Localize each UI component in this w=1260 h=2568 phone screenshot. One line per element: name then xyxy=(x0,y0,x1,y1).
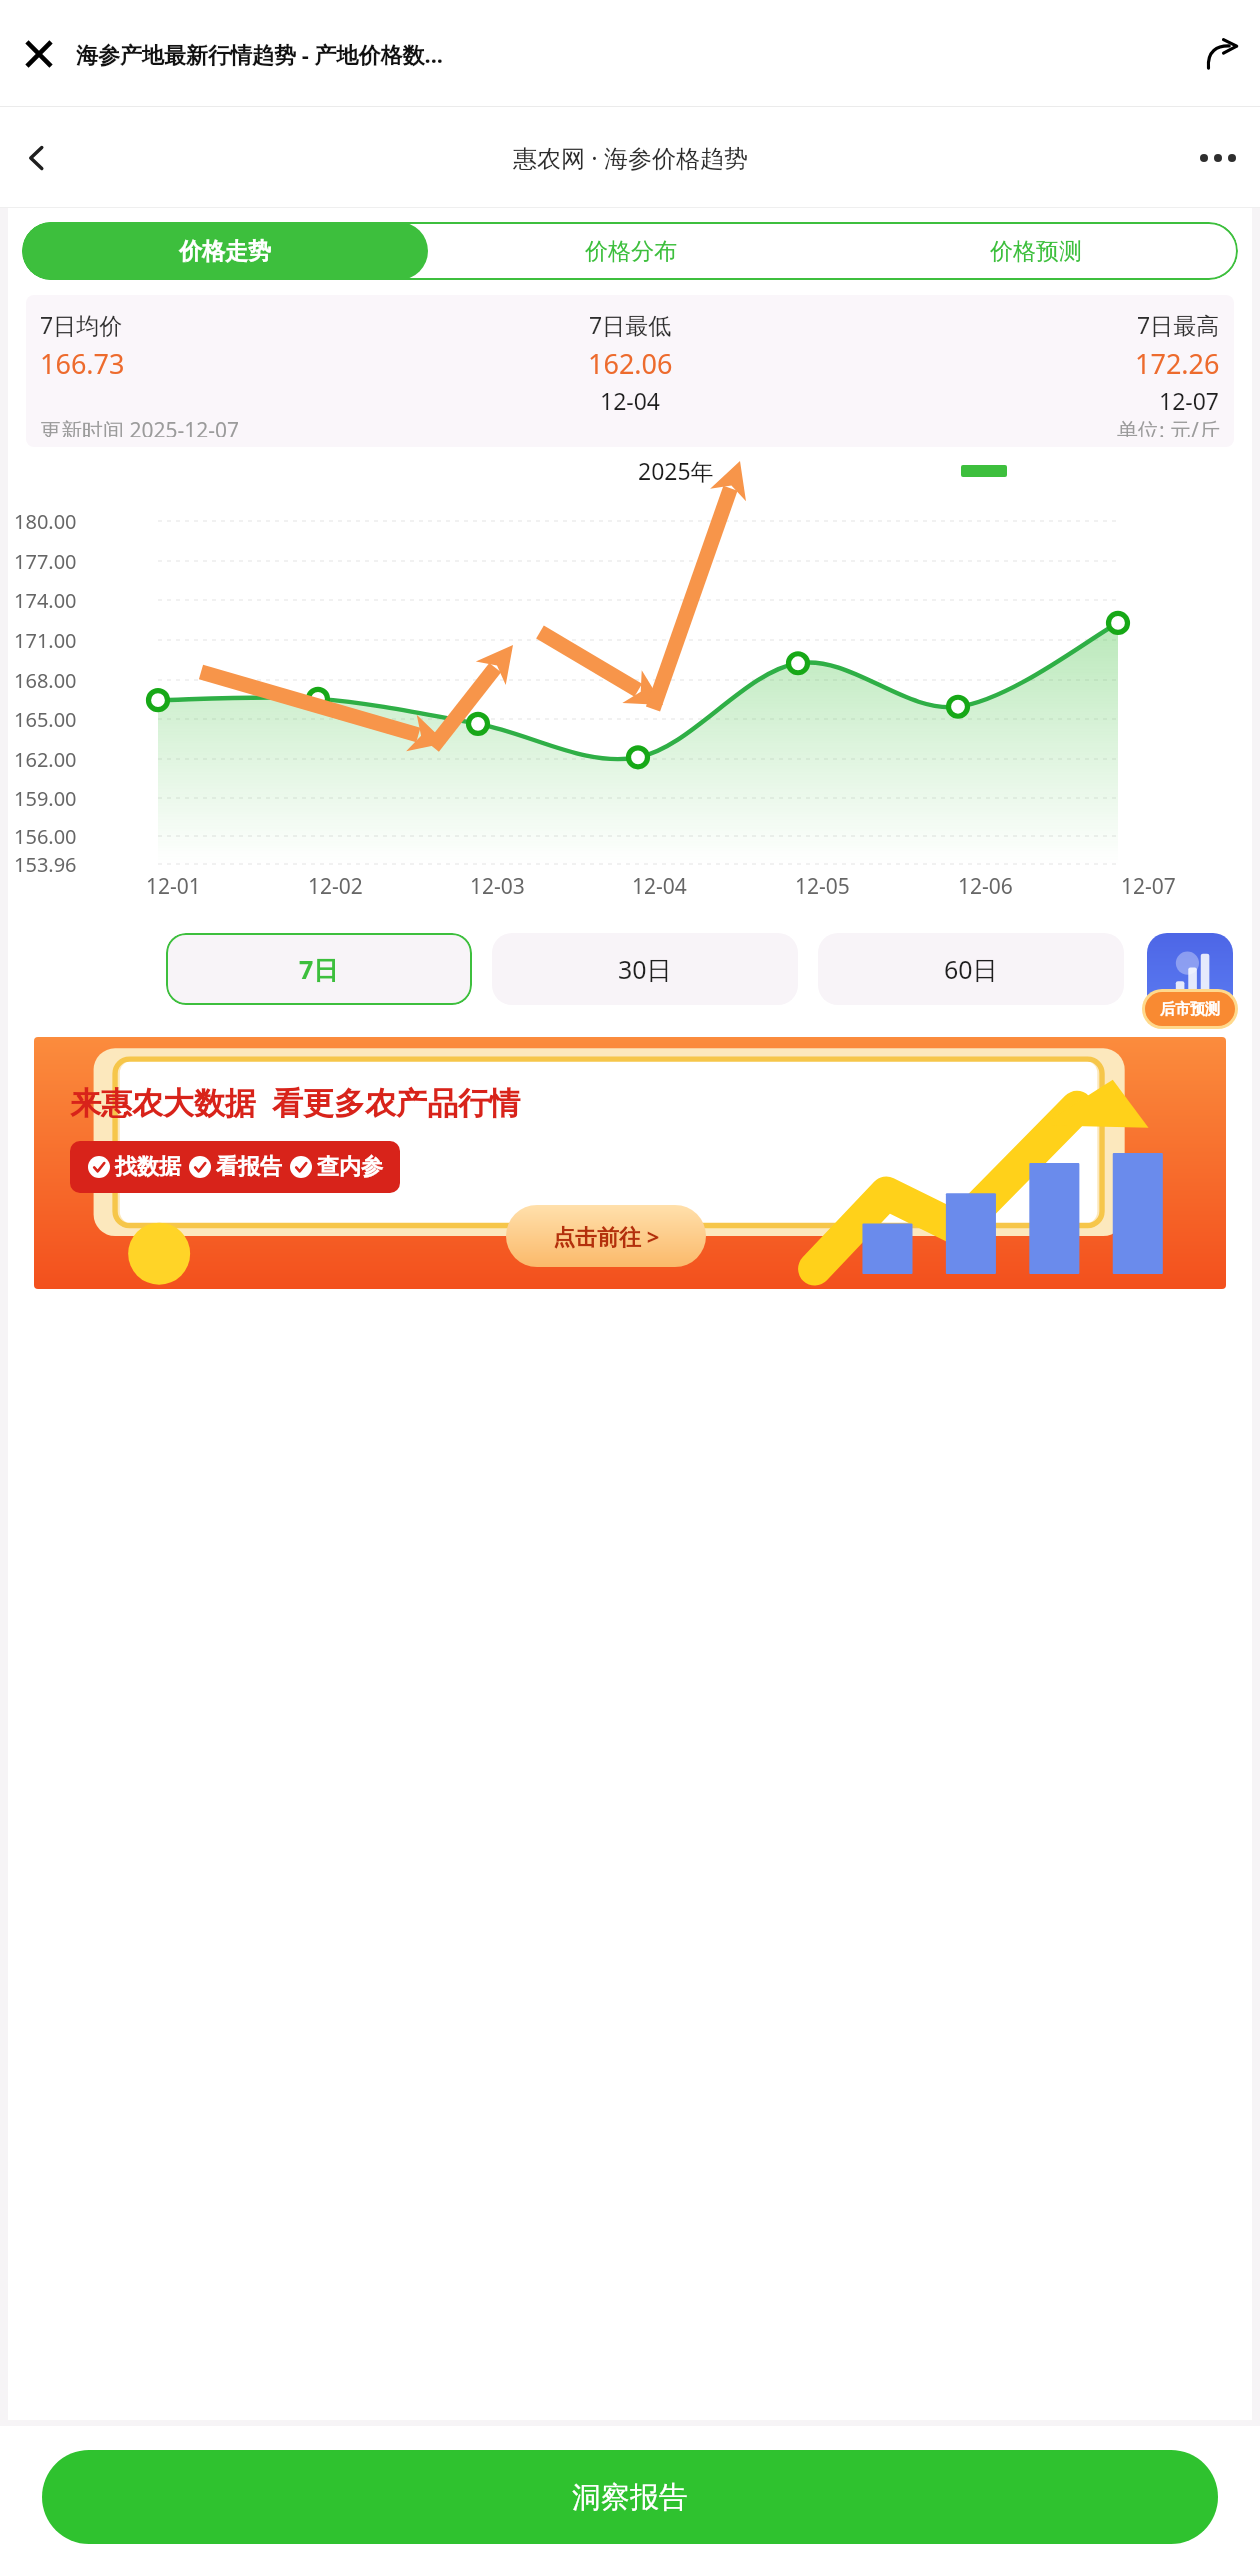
staticText: 168.00 xyxy=(14,667,77,694)
staticText: 166.73 xyxy=(40,345,125,382)
staticText: 12-01 xyxy=(146,872,201,901)
staticText: 12-02 xyxy=(308,872,363,901)
staticText: 7日均价 xyxy=(40,309,123,340)
staticText: 价格预测 xyxy=(990,237,1082,266)
button[interactable]: 价格预测 xyxy=(833,222,1238,280)
staticText: 后市预测 xyxy=(1160,1000,1220,1019)
button[interactable]: More options xyxy=(1190,130,1246,186)
staticText: 价格走势 xyxy=(179,237,271,266)
staticText: 更新时间 2025-12-07 xyxy=(40,416,240,437)
staticText: 12-07 xyxy=(1159,385,1220,416)
staticText: 12-07 xyxy=(1121,872,1176,901)
staticText: 180.00 xyxy=(14,508,77,535)
staticText: 60日 xyxy=(944,952,998,986)
staticText: 洞察报告 xyxy=(572,2479,688,2516)
staticText: 174.00 xyxy=(14,587,77,614)
staticText: 单位: 元/斤 xyxy=(1117,416,1220,437)
staticText: 12-03 xyxy=(470,872,525,901)
button[interactable]: 后市预测 xyxy=(1147,933,1233,1019)
staticText: 12-05 xyxy=(795,872,850,901)
staticText: 看报告 xyxy=(216,1153,282,1181)
staticText: 171.00 xyxy=(14,627,77,654)
staticText: 12-06 xyxy=(958,872,1013,901)
staticText: 7日最高 xyxy=(1137,309,1220,340)
staticText: 156.00 xyxy=(14,823,77,850)
staticText: 海参产地最新行情趋势 - 产地价格数... xyxy=(76,39,1192,69)
staticText: 162.06 xyxy=(588,345,673,382)
staticText: 12-04 xyxy=(600,385,661,416)
button[interactable]: 30日 xyxy=(492,933,798,1005)
staticText: 172.26 xyxy=(1135,345,1220,382)
staticText: 找数据 xyxy=(115,1153,181,1181)
staticText: 165.00 xyxy=(14,706,77,733)
staticText: 查内参 xyxy=(317,1153,383,1181)
staticText: 159.00 xyxy=(14,785,77,812)
staticText: 2025年 xyxy=(638,455,714,486)
staticText: 惠农网 · 海参价格趋势 xyxy=(513,141,748,174)
staticText: 价格分布 xyxy=(585,237,677,266)
button[interactable]: Share xyxy=(1196,28,1248,80)
button[interactable]: 价格走势 xyxy=(22,222,428,280)
staticText: 来惠农大数据 看更多农产品行情 xyxy=(70,1081,521,1123)
staticText: 177.00 xyxy=(14,548,77,575)
button[interactable]: 7日 xyxy=(166,933,472,1005)
button[interactable]: Back xyxy=(8,129,66,187)
button[interactable]: Close xyxy=(14,29,64,79)
button[interactable]: 价格分布 xyxy=(428,222,833,280)
staticText: 12-04 xyxy=(632,872,687,901)
staticText: 7日最低 xyxy=(589,309,672,340)
staticText: 153.96 xyxy=(14,851,77,878)
button[interactable]: 来惠农大数据 看更多农产品行情 xyxy=(34,1037,1226,1289)
staticText: 162.00 xyxy=(14,746,77,773)
button[interactable]: 洞察报告 xyxy=(42,2450,1218,2544)
staticText: 7日 xyxy=(299,952,339,986)
staticText: 30日 xyxy=(618,952,672,986)
button[interactable]: 60日 xyxy=(818,933,1124,1005)
staticText: 点击前往 > xyxy=(553,1221,660,1251)
